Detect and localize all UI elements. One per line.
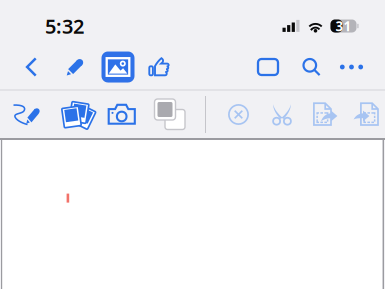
button[interactable]: Photo library xyxy=(56,92,96,136)
button[interactable]: Deselect xyxy=(218,92,258,136)
button[interactable]: Copy xyxy=(304,92,344,136)
button[interactable]: Arrange xyxy=(150,92,190,136)
button[interactable]: Markup xyxy=(6,92,46,136)
button[interactable]: Camera xyxy=(102,92,142,136)
button[interactable]: Page view xyxy=(248,45,288,89)
button[interactable]: More xyxy=(331,45,371,89)
staticText: 5:32 xyxy=(45,13,84,39)
button[interactable]: Draw xyxy=(56,45,93,89)
button[interactable]: Search xyxy=(291,45,331,89)
button[interactable]: Insert photo xyxy=(99,45,136,89)
button[interactable]: Like xyxy=(139,45,181,89)
button[interactable]: Paste xyxy=(349,92,385,136)
button[interactable]: Cut xyxy=(262,92,302,136)
staticText: 31 xyxy=(335,17,351,35)
button[interactable]: Back xyxy=(13,45,49,89)
